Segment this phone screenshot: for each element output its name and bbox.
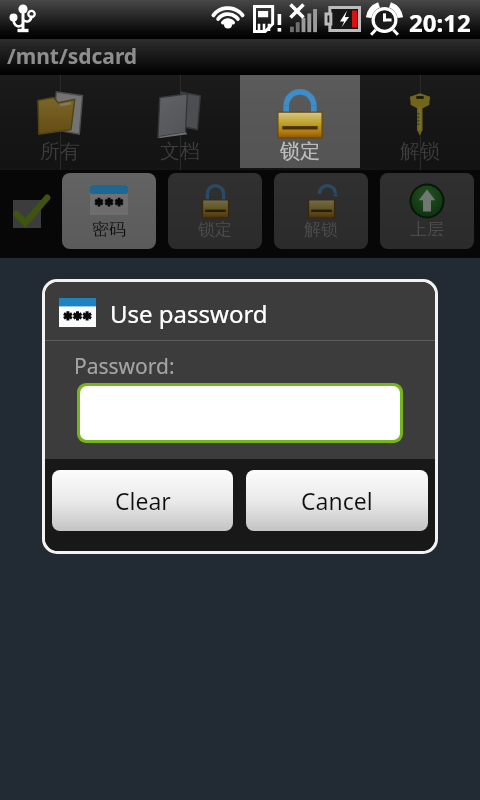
button[interactable]: 解锁	[274, 173, 368, 249]
staticText: 解锁	[400, 139, 440, 164]
staticText: /mnt/sdcard	[7, 42, 138, 71]
button[interactable]: 上层	[380, 173, 474, 249]
staticText: 20:12	[409, 6, 471, 39]
staticText: 锁定	[198, 219, 232, 240]
button[interactable]	[80, 386, 400, 440]
staticText: Cancel	[301, 485, 373, 516]
staticText: Clear	[115, 485, 171, 516]
button[interactable]: 解锁	[360, 75, 480, 170]
button[interactable]: Clear	[52, 470, 233, 531]
staticText: 密码	[92, 219, 126, 240]
button[interactable]: 锁定	[168, 173, 262, 249]
staticText: 锁定	[280, 139, 320, 164]
button[interactable]: 锁定	[240, 75, 360, 170]
button[interactable]: 文档	[120, 75, 240, 170]
button[interactable]: 密码	[62, 173, 156, 249]
staticText: 上层	[410, 219, 444, 240]
staticText: 所有	[40, 139, 80, 164]
staticText: Password:	[74, 352, 175, 381]
staticText: Use password	[110, 297, 268, 330]
button[interactable]: Select all	[13, 200, 41, 228]
staticText: 文档	[160, 139, 200, 164]
staticText: 解锁	[304, 219, 338, 240]
button[interactable]: 所有	[0, 75, 120, 170]
button[interactable]: Cancel	[246, 470, 428, 531]
